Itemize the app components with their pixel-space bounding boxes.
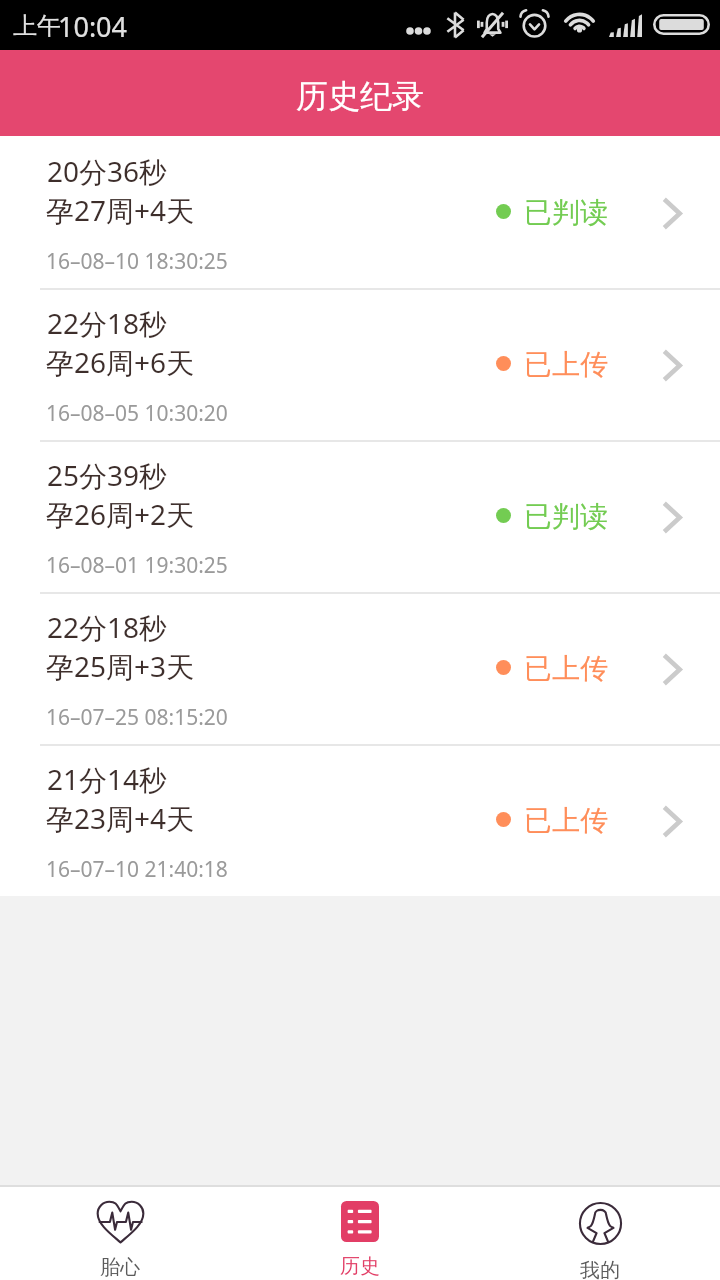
button[interactable]: 21分14秒	[0, 744, 720, 896]
staticText: 16–08–05 10:30:20	[46, 399, 228, 428]
staticText: 孕25周+3天	[46, 647, 195, 685]
staticText: 已上传	[524, 347, 608, 382]
button[interactable]: 20分36秒	[0, 136, 720, 288]
button[interactable]: 22分18秒	[0, 592, 720, 744]
staticText: 10:04	[58, 8, 128, 45]
staticText: 历史纪录	[0, 76, 720, 116]
button[interactable]: 胎心	[0, 1187, 240, 1280]
staticText: 胎心	[100, 1255, 140, 1280]
staticText: 16–08–01 19:30:25	[46, 551, 228, 580]
button[interactable]: 25分39秒	[0, 440, 720, 592]
button[interactable]: 我的	[480, 1187, 720, 1280]
staticText: 22分18秒	[47, 608, 168, 646]
staticText: 16–07–25 08:15:20	[46, 703, 228, 732]
staticText: 孕26周+2天	[46, 495, 195, 533]
other: 胎心	[97, 1201, 144, 1243]
staticText: 25分39秒	[47, 456, 168, 494]
staticText: 已判读	[524, 499, 608, 534]
button[interactable]: 22分18秒	[0, 288, 720, 440]
staticText: 历史	[340, 1254, 380, 1279]
staticText: 孕27周+4天	[46, 191, 195, 229]
staticText: 孕26周+6天	[46, 343, 195, 381]
button[interactable]: 历史	[240, 1187, 480, 1280]
staticText: 22分18秒	[47, 304, 168, 342]
staticText: 已判读	[524, 195, 608, 230]
other: 历史	[341, 1201, 379, 1242]
staticText: 孕23周+4天	[46, 799, 195, 837]
staticText: 16–08–10 18:30:25	[46, 247, 228, 276]
staticText: 16–07–10 21:40:18	[46, 855, 228, 884]
other: 我的	[578, 1201, 623, 1246]
staticText: 已上传	[524, 803, 608, 838]
staticText: 已上传	[524, 651, 608, 686]
staticText: 21分14秒	[47, 760, 168, 798]
staticText: 上午	[13, 11, 61, 41]
staticText: 我的	[580, 1258, 620, 1280]
staticText: 20分36秒	[47, 152, 168, 190]
